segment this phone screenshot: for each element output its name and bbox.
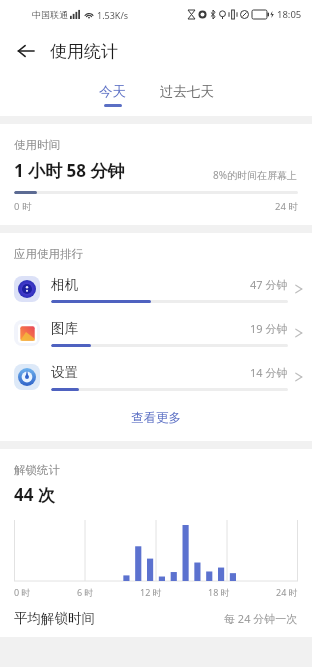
staticText: 44 次 <box>14 483 55 506</box>
staticText: 1.53K/s <box>97 9 129 21</box>
staticText: 中国联通 <box>32 9 68 20</box>
staticText: 每 24 分钟一次 <box>224 611 298 626</box>
staticText: 6 时 <box>77 586 94 598</box>
staticText: 过去七天 <box>160 83 214 100</box>
staticText: 8%的时间在屏幕上 <box>213 168 298 182</box>
staticText: 解锁统计 <box>14 463 60 477</box>
staticText: 0 时 <box>14 586 31 598</box>
button[interactable]: 设置 <box>0 355 312 399</box>
staticText: 1 小时 58 分钟 <box>14 159 125 182</box>
staticText: 设置 <box>51 364 78 381</box>
staticText: 图库 <box>51 320 78 337</box>
staticText: 今天 <box>99 83 126 100</box>
staticText: 24 时 <box>276 586 298 598</box>
staticText: 18:05 <box>277 8 302 21</box>
staticText: 相机 <box>51 276 78 293</box>
staticText: 平均解锁时间 <box>14 610 95 627</box>
staticText: 19 分钟 <box>250 321 288 336</box>
staticText: 47 分钟 <box>250 277 288 292</box>
button[interactable]: 查看更多 <box>0 399 312 437</box>
staticText: 使用时间 <box>14 138 60 152</box>
staticText: 18 时 <box>208 586 230 598</box>
button[interactable]: 今天 <box>95 81 130 109</box>
button[interactable]: 图库 <box>0 311 312 355</box>
staticText: 查看更多 <box>131 410 181 426</box>
staticText: 24 时 <box>275 200 298 213</box>
button[interactable]: 相机 <box>0 267 312 311</box>
staticText: 12 时 <box>140 586 162 598</box>
staticText: 14 分钟 <box>250 365 288 380</box>
button[interactable]: 返回 <box>8 33 44 69</box>
staticText: 应用使用排行 <box>14 247 83 261</box>
button[interactable]: 过去七天 <box>156 81 218 109</box>
staticText: 使用统计 <box>50 41 118 62</box>
staticText: 0 时 <box>14 200 32 213</box>
